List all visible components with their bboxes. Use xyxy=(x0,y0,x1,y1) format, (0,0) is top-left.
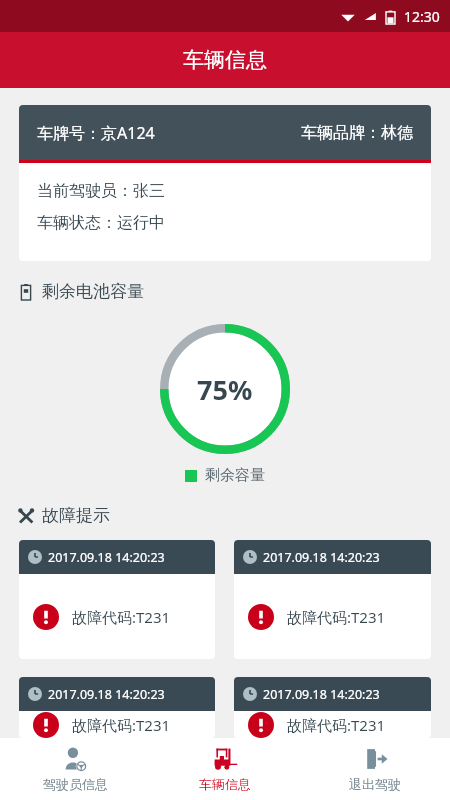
staticText: 75% xyxy=(197,371,253,408)
button[interactable]: 驾驶员信息 xyxy=(0,738,150,800)
staticText: 驾驶员信息 xyxy=(43,776,108,792)
staticText: 12:30 xyxy=(404,7,440,26)
button[interactable]: 车辆信息 xyxy=(150,738,300,800)
staticText: 退出驾驶 xyxy=(349,776,401,792)
staticText: 故障代码:T231 xyxy=(287,607,386,627)
staticText: 车牌号：京A124 xyxy=(37,122,155,144)
staticText: 剩余容量 xyxy=(205,466,265,485)
staticText: 故障提示 xyxy=(42,505,110,526)
staticText: 故障代码:T231 xyxy=(72,607,171,627)
button[interactable]: 车牌号：京A124 xyxy=(19,105,431,261)
staticText: 2017.09.18 14:20:23 xyxy=(48,549,165,566)
staticText: 当前驾驶员：张三 xyxy=(37,181,165,201)
staticText: 2017.09.18 14:20:23 xyxy=(263,549,380,566)
staticText: 剩余电池容量 xyxy=(42,281,144,302)
staticText: 车辆信息 xyxy=(199,776,251,792)
button[interactable]: 2017.09.18 14:20:23 xyxy=(234,677,431,738)
staticText: 车辆状态：运行中 xyxy=(37,213,165,233)
staticText: 车辆信息 xyxy=(183,47,267,73)
staticText: 2017.09.18 14:20:23 xyxy=(48,686,165,703)
staticText: 故障代码:T231 xyxy=(287,715,386,735)
button[interactable]: 2017.09.18 14:20:23 xyxy=(19,540,215,659)
staticText: 2017.09.18 14:20:23 xyxy=(263,686,380,703)
staticText: 故障代码:T231 xyxy=(72,715,171,735)
button[interactable]: 退出驾驶 xyxy=(300,738,450,800)
button[interactable]: 2017.09.18 14:20:23 xyxy=(234,540,431,659)
button[interactable]: 2017.09.18 14:20:23 xyxy=(19,677,215,738)
staticText: 车辆品牌：林德 xyxy=(301,123,413,143)
